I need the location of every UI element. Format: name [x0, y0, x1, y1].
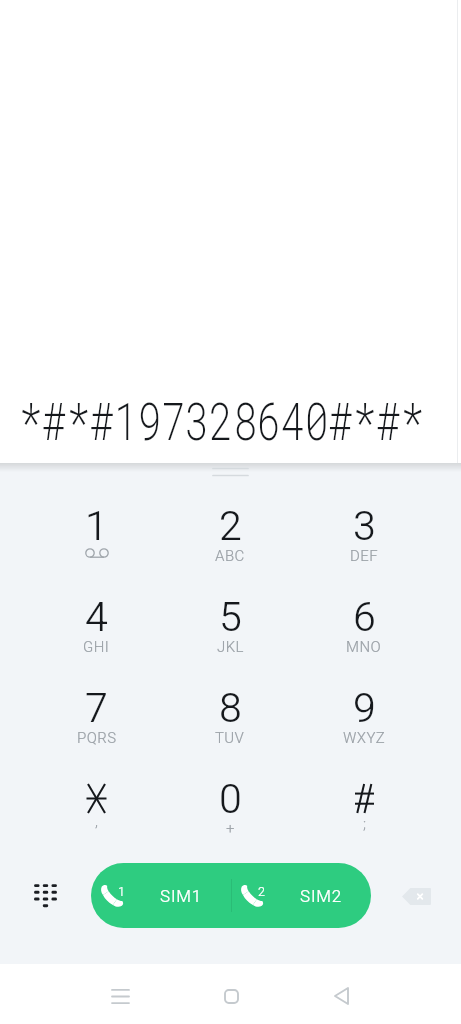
- staticText: 9: [353, 684, 376, 730]
- staticText: ABC: [215, 547, 245, 565]
- staticText: JKL: [217, 638, 244, 656]
- staticText: 4: [85, 593, 108, 639]
- button[interactable]: 1: [30, 502, 163, 593]
- button[interactable]: 9: [297, 684, 431, 775]
- button[interactable]: 6: [297, 593, 431, 684]
- staticText: +: [226, 819, 235, 837]
- staticText: 1: [85, 502, 108, 548]
- button[interactable]: Keypad: [15, 864, 75, 924]
- button[interactable]: 2: [163, 502, 297, 593]
- staticText: GHI: [83, 638, 110, 656]
- button[interactable]: 3: [297, 502, 431, 593]
- button[interactable]: Recents: [65, 966, 176, 1024]
- staticText: TUV: [215, 729, 245, 747]
- button[interactable]: ,: [30, 775, 163, 866]
- staticText: 8: [219, 684, 242, 730]
- staticText: ;: [363, 815, 366, 833]
- button[interactable]: ;: [297, 775, 431, 866]
- button[interactable]: 5: [163, 593, 297, 684]
- button[interactable]: 8: [163, 684, 297, 775]
- button[interactable]: Back: [286, 966, 396, 1024]
- staticText: MNO: [346, 638, 382, 656]
- staticText: *#*#197328640#*#*: [18, 386, 425, 444]
- staticText: SIM2: [300, 886, 343, 906]
- staticText: ,: [95, 812, 98, 830]
- staticText: DEF: [350, 547, 378, 565]
- button[interactable]: 0: [163, 775, 297, 866]
- staticText: 3: [353, 502, 376, 548]
- staticText: 0: [219, 775, 242, 821]
- button[interactable]: 2: [231, 863, 371, 928]
- staticText: 1: [118, 884, 125, 899]
- button[interactable]: 1: [91, 863, 231, 928]
- button[interactable]: 7: [30, 684, 163, 775]
- button[interactable]: Backspace: [386, 866, 446, 926]
- staticText: 2: [258, 884, 265, 899]
- button[interactable]: Home: [176, 966, 286, 1024]
- staticText: 2: [219, 502, 242, 548]
- button[interactable]: 4: [30, 593, 163, 684]
- staticText: 7: [85, 684, 108, 730]
- staticText: PQRS: [77, 729, 117, 747]
- staticText: WXYZ: [343, 729, 386, 747]
- staticText: 5: [219, 593, 242, 639]
- staticText: SIM1: [160, 886, 203, 906]
- staticText: 6: [353, 593, 376, 639]
